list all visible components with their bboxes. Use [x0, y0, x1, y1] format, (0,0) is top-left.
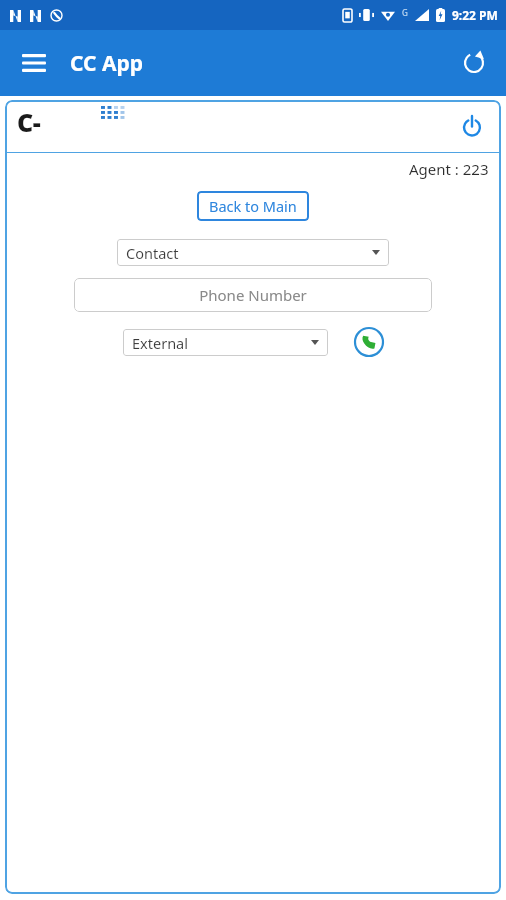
staticText: C-ZENTRIX — [17, 105, 137, 144]
button[interactable]: Phone Number — [74, 278, 432, 312]
staticText: Agent : 223 — [409, 159, 489, 179]
button[interactable]: Power / Logout — [453, 107, 491, 145]
button[interactable]: Back to Main — [197, 191, 309, 221]
staticText: External — [132, 333, 188, 353]
staticText: CC App — [70, 49, 144, 78]
staticText: Contact — [126, 243, 179, 263]
staticText: G — [402, 7, 408, 18]
staticText: Phone Number — [199, 285, 307, 305]
staticText: 9:22 PM — [452, 7, 498, 23]
staticText: Back to Main — [209, 196, 297, 216]
button[interactable]: Contact — [117, 239, 389, 266]
button[interactable]: Call — [350, 323, 388, 361]
button[interactable]: Refresh — [452, 41, 496, 85]
button[interactable]: External — [123, 329, 328, 356]
button[interactable]: Open navigation menu — [12, 41, 56, 85]
